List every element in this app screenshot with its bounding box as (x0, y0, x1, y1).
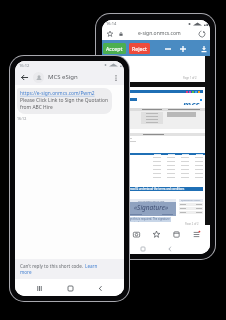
staticText: e-sign.onmcs.com (138, 30, 181, 37)
button[interactable]: Zoom out (162, 43, 173, 54)
staticText: Accept (106, 45, 123, 52)
staticText: Page 1 of 2 (183, 76, 197, 80)
staticText: from ABC Hire (20, 104, 53, 111)
button[interactable]: More options (110, 72, 121, 83)
button[interactable]: Back (94, 282, 106, 294)
button[interactable]: Back (165, 244, 174, 253)
button[interactable]: Reload (197, 29, 207, 39)
staticText: 16:14 (106, 21, 117, 26)
button[interactable]: Bookmark (105, 29, 115, 39)
staticText: Can't reply to this short code. (20, 263, 85, 269)
staticText: CUSTOMER SIGNATURE (138, 199, 165, 202)
button[interactable]: Recents (33, 282, 45, 294)
staticText: Sign this is required. The signature is … (126, 217, 171, 222)
button[interactable]: Accept (103, 43, 126, 54)
button[interactable]: Reject (129, 43, 150, 54)
staticText: Learn (85, 263, 98, 269)
staticText: MCS eSign (48, 73, 78, 81)
button[interactable]: Share (130, 228, 142, 240)
staticText: QUOTATION TOTAL (181, 199, 201, 202)
staticText: 16:12 (19, 63, 30, 68)
button[interactable]: Menu (190, 228, 202, 240)
button[interactable]: Home (64, 282, 76, 294)
button[interactable]: Zoom in (177, 43, 188, 54)
staticText: more (20, 269, 32, 275)
staticText: «Signature» (134, 203, 169, 212)
button[interactable]: Tabs (170, 228, 182, 240)
staticText: 16:12 (17, 116, 27, 121)
button[interactable]: Bookmark (150, 228, 162, 240)
button[interactable]: Back (18, 71, 30, 83)
button[interactable]: Home (138, 244, 147, 253)
staticText: https://e-sign.onmcs.com/Pwm2 (20, 90, 95, 97)
staticText: Reject (132, 45, 147, 52)
staticText: I have read & understood the terms and c… (122, 187, 185, 191)
staticText: Page 2 of 2 (185, 222, 199, 225)
button[interactable]: Download (198, 43, 209, 54)
staticText: Please Click Link to Sign the Quotation (20, 97, 109, 104)
staticText: mcs (183, 98, 200, 105)
